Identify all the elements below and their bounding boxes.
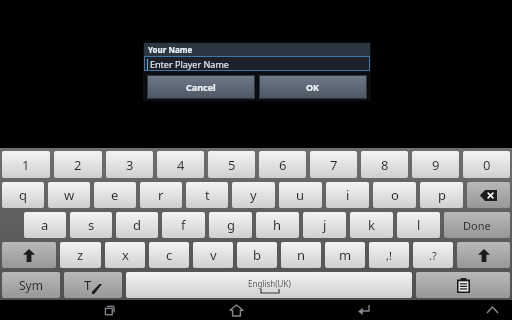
button[interactable]: l xyxy=(397,212,440,238)
button[interactable]: x xyxy=(105,242,145,268)
staticText: 7 xyxy=(330,156,338,174)
staticText: b xyxy=(253,246,261,264)
staticText: ,! xyxy=(386,248,392,263)
button[interactable]: Backspace xyxy=(467,182,510,208)
button[interactable]: 0 xyxy=(463,151,510,178)
staticText: 3 xyxy=(126,156,134,174)
staticText: Cancel xyxy=(186,81,216,93)
button[interactable]: Clipboard xyxy=(416,272,510,298)
staticText: c xyxy=(166,246,173,264)
button[interactable]: 6 xyxy=(259,151,306,178)
staticText: 6 xyxy=(279,156,287,174)
staticText: q xyxy=(19,186,27,204)
button[interactable]: d xyxy=(116,212,158,238)
button[interactable]: k xyxy=(350,212,393,238)
button[interactable]: 1 xyxy=(2,151,50,178)
button[interactable]: c xyxy=(149,242,189,268)
button[interactable]: Enter Player Name xyxy=(144,56,370,71)
staticText: T xyxy=(84,276,92,294)
staticText: f xyxy=(181,216,186,234)
button[interactable]: o xyxy=(373,182,416,208)
staticText: w xyxy=(64,186,75,204)
staticText: 4 xyxy=(177,156,185,174)
staticText: e xyxy=(111,186,119,204)
staticText: a xyxy=(41,216,49,234)
staticText: 1 xyxy=(22,156,30,174)
button[interactable]: j xyxy=(303,212,346,238)
staticText: m xyxy=(339,246,352,264)
button[interactable]: ,! xyxy=(369,242,409,268)
staticText: l xyxy=(417,216,421,234)
button[interactable]: 4 xyxy=(157,151,204,178)
button[interactable]: n xyxy=(281,242,321,268)
staticText: j xyxy=(323,216,327,234)
staticText: n xyxy=(297,246,306,264)
button[interactable]: s xyxy=(70,212,112,238)
button[interactable]: Home xyxy=(216,300,256,320)
button[interactable]: f xyxy=(162,212,205,238)
staticText: p xyxy=(438,186,446,204)
button[interactable]: q xyxy=(2,182,44,208)
button[interactable]: u xyxy=(279,182,322,208)
staticText: 8 xyxy=(381,156,389,174)
button[interactable]: h xyxy=(256,212,299,238)
staticText: 0 xyxy=(483,156,491,174)
button[interactable]: z xyxy=(60,242,101,268)
button[interactable]: p xyxy=(420,182,463,208)
button[interactable]: Back xyxy=(344,300,384,320)
button[interactable]: Done xyxy=(444,212,510,238)
button[interactable]: v xyxy=(193,242,233,268)
staticText: Done xyxy=(463,218,491,233)
button[interactable]: OK xyxy=(259,75,367,99)
button[interactable]: 7 xyxy=(310,151,357,178)
staticText: o xyxy=(391,186,399,204)
staticText: Enter Player Name xyxy=(150,58,229,70)
button[interactable]: 2 xyxy=(54,151,102,178)
staticText: g xyxy=(227,216,235,234)
staticText: v xyxy=(210,246,217,264)
staticText: h xyxy=(273,216,282,234)
button[interactable]: w xyxy=(48,182,90,208)
staticText: 2 xyxy=(74,156,82,174)
staticText: OK xyxy=(306,81,320,93)
button[interactable]: 3 xyxy=(106,151,153,178)
staticText: 5 xyxy=(228,156,236,174)
button[interactable]: Space xyxy=(126,272,412,298)
staticText: i xyxy=(346,186,350,204)
button[interactable]: g xyxy=(209,212,252,238)
staticText: y xyxy=(250,186,257,204)
button[interactable]: Shift xyxy=(2,242,56,268)
button[interactable]: Show keyboard xyxy=(472,300,512,320)
staticText: r xyxy=(158,186,164,204)
staticText: k xyxy=(368,216,375,234)
button[interactable]: Shift xyxy=(457,242,510,268)
staticText: English(UK) xyxy=(248,278,291,289)
button[interactable]: i xyxy=(326,182,369,208)
staticText: t xyxy=(205,186,210,204)
button[interactable]: t xyxy=(186,182,228,208)
staticText: Sym xyxy=(19,277,43,293)
button[interactable]: .? xyxy=(413,242,453,268)
staticText: .? xyxy=(429,248,437,263)
button[interactable]: b xyxy=(237,242,277,268)
staticText: u xyxy=(296,186,305,204)
staticText: x xyxy=(122,246,129,264)
staticText: Your Name xyxy=(148,44,193,55)
button[interactable]: Cancel xyxy=(147,75,255,99)
staticText: z xyxy=(77,246,84,264)
button[interactable]: e xyxy=(94,182,136,208)
button[interactable]: 8 xyxy=(361,151,408,178)
button[interactable]: r xyxy=(140,182,182,208)
button[interactable]: Input method xyxy=(64,272,122,298)
staticText: d xyxy=(133,216,141,234)
staticText: 9 xyxy=(432,156,440,174)
button[interactable]: Sym xyxy=(2,272,60,298)
button[interactable]: Recents xyxy=(88,300,128,320)
staticText: s xyxy=(88,216,95,234)
button[interactable]: a xyxy=(24,212,66,238)
button[interactable]: m xyxy=(325,242,365,268)
button[interactable]: 9 xyxy=(412,151,459,178)
button[interactable]: y xyxy=(232,182,275,208)
button[interactable]: 5 xyxy=(208,151,255,178)
